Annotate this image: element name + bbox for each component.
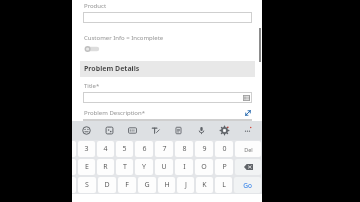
staticText: Problem Details (84, 64, 140, 74)
staticText: L (222, 180, 226, 190)
staticText: Del (244, 146, 253, 153)
staticText: P (222, 162, 227, 172)
button[interactable]: E (78, 159, 95, 175)
staticText: F (125, 180, 129, 190)
staticText: 8 (182, 144, 187, 154)
button[interactable]: R (97, 159, 114, 175)
button[interactable]: 3 (78, 141, 95, 157)
button[interactable]: Customer info toggle, disabled (84, 45, 100, 53)
button[interactable]: L (215, 177, 232, 193)
staticText: O (201, 162, 207, 172)
button[interactable]: T (116, 159, 133, 175)
button[interactable]: 4 (97, 141, 114, 157)
staticText: Title* (84, 82, 100, 90)
staticText: H (164, 180, 170, 190)
button[interactable]: 9 (195, 141, 213, 157)
button[interactable]: D (98, 177, 116, 193)
button[interactable]: F (118, 177, 136, 193)
button[interactable]: More options (239, 122, 256, 139)
button[interactable]: 6 (135, 141, 153, 157)
other: Scan barcode (243, 95, 250, 101)
button[interactable]: Go (234, 177, 261, 193)
staticText: K (202, 180, 207, 190)
staticText: Customer Info = Incomplete (84, 34, 164, 42)
staticText: 6 (142, 144, 147, 154)
staticText: T (123, 162, 127, 172)
button[interactable]: S (78, 177, 96, 193)
button[interactable]: G (138, 177, 156, 193)
button[interactable] (83, 12, 252, 23)
button[interactable]: Backspace (235, 159, 261, 175)
button[interactable]: 8 (175, 141, 193, 157)
button[interactable]: 0 (215, 141, 233, 157)
button[interactable]: J (177, 177, 194, 193)
staticText: J (185, 180, 187, 190)
button[interactable]: Voice input (193, 122, 210, 139)
button[interactable]: H (158, 177, 175, 193)
staticText: 4 (103, 144, 108, 154)
staticText: R (103, 162, 108, 172)
button[interactable]: key (72, 177, 76, 193)
button[interactable]: I (175, 159, 193, 175)
staticText: D (104, 180, 110, 190)
button[interactable]: key (72, 141, 76, 157)
button[interactable]: 5 (116, 141, 133, 157)
staticText: E (85, 162, 89, 172)
staticText: 0 (222, 144, 227, 154)
staticText: S (85, 180, 89, 190)
button[interactable]: Y (135, 159, 153, 175)
staticText: I (183, 162, 186, 172)
button[interactable]: 7 (155, 141, 173, 157)
staticText: Go (243, 181, 252, 190)
button[interactable]: Settings (216, 122, 233, 139)
button[interactable]: key (72, 159, 76, 175)
staticText: 3 (84, 144, 89, 154)
button[interactable]: U (155, 159, 173, 175)
staticText: 7 (162, 144, 167, 154)
staticText: Problem Description* (84, 109, 146, 117)
button[interactable]: P (215, 159, 233, 175)
button[interactable]: Emoji (78, 122, 95, 139)
button[interactable]: Expand description (244, 109, 252, 117)
staticText: G (144, 180, 150, 190)
staticText: 9 (202, 144, 207, 154)
button[interactable]: Del (235, 141, 261, 157)
button[interactable]: K (196, 177, 213, 193)
staticText: U (161, 162, 167, 172)
button[interactable]: Clipboard (170, 122, 187, 139)
button[interactable]: Handwriting (147, 122, 164, 139)
button[interactable]: O (195, 159, 213, 175)
button[interactable]: Problem Details (80, 61, 255, 77)
staticText: 5 (122, 144, 127, 154)
button[interactable]: Stickers (101, 122, 118, 139)
button[interactable]: GIF (124, 122, 141, 139)
staticText: Y (142, 162, 146, 172)
staticText: Product (84, 2, 107, 10)
button[interactable]: Scan barcode (83, 92, 252, 103)
